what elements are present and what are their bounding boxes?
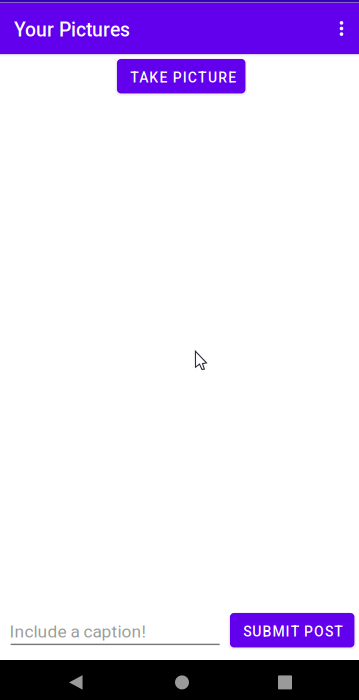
staticText: Your Pictures bbox=[14, 19, 130, 41]
button[interactable]: Home bbox=[160, 662, 204, 700]
button[interactable]: More options bbox=[323, 3, 359, 54]
staticText: SUBMIT POST bbox=[243, 623, 343, 640]
staticText: TAKE PICTURE bbox=[130, 69, 236, 86]
button[interactable]: Recent apps bbox=[263, 662, 307, 700]
button[interactable]: Back bbox=[54, 662, 98, 700]
staticText: Include a caption! bbox=[9, 621, 145, 642]
button[interactable]: SUBMIT POST bbox=[228, 611, 356, 649]
button[interactable]: TAKE PICTURE bbox=[115, 57, 247, 95]
